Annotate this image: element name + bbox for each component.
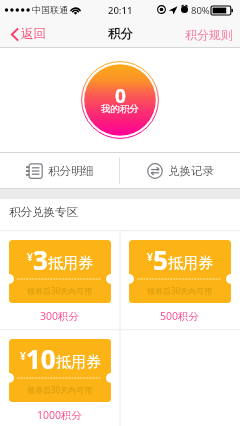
staticText: 3 <box>33 242 48 276</box>
button[interactable]: ¥ <box>0 329 120 426</box>
staticText: 积分兑换专区 <box>9 205 78 219</box>
staticText: 300积分 <box>40 309 80 323</box>
staticText: 兑换记录 <box>168 164 214 178</box>
staticText: 抵用券 <box>56 353 101 372</box>
button[interactable]: 兑换记录 <box>120 152 240 189</box>
staticText: 5 <box>153 242 168 276</box>
staticText: 10 <box>26 341 56 375</box>
button[interactable]: ¥ <box>120 230 240 329</box>
staticText: 抵用券 <box>48 254 93 273</box>
staticText: 500积分 <box>160 309 200 323</box>
button[interactable]: 返回 <box>11 26 46 42</box>
staticText: 0 <box>115 83 126 109</box>
staticText: 领券后30天内可用 <box>27 384 93 395</box>
staticText: 1000积分 <box>37 408 83 422</box>
staticText: 积分 <box>108 26 133 42</box>
button[interactable]: 积分规则 <box>185 27 233 42</box>
button[interactable]: ¥ <box>0 230 120 329</box>
staticText: 领券后30天内可用 <box>147 285 213 296</box>
staticText: 20:11 <box>108 4 133 17</box>
staticText: 返回 <box>21 26 46 42</box>
staticText: 80% <box>191 4 210 17</box>
staticText: ¥ <box>20 349 26 363</box>
staticText: ¥ <box>27 250 33 264</box>
button[interactable]: 积分明细 <box>0 152 119 189</box>
staticText: 我的积分 <box>101 103 139 115</box>
staticText: ¥ <box>147 250 153 264</box>
staticText: 抵用券 <box>168 254 213 273</box>
staticText: 领券后30天内可用 <box>27 285 93 296</box>
staticText: 中国联通 <box>32 4 68 15</box>
staticText: 积分明细 <box>48 164 94 178</box>
